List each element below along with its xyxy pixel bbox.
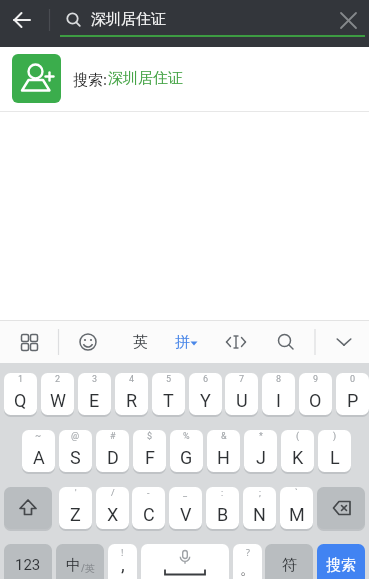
staticText: /英 [81,561,95,575]
staticText: N [253,504,266,525]
button[interactable]: : [206,487,239,529]
button[interactable]: 搜索 [317,544,365,579]
button[interactable]: 0 [336,373,369,415]
button[interactable]: 2 [41,373,74,415]
button[interactable]: % [170,430,203,472]
button[interactable]: ; [243,487,276,529]
button[interactable]: ! [108,544,137,579]
button[interactable]: 英 [120,321,160,363]
staticText: 6 [203,374,209,385]
staticText: O [309,390,322,411]
staticText: 8 [276,374,282,385]
staticText: R [126,390,138,411]
staticText: A [33,447,45,468]
staticText: U [236,390,248,411]
staticText: I [276,390,281,411]
staticText: F [145,447,155,468]
button[interactable]: 1 [4,373,37,415]
button[interactable]: * [244,430,277,472]
button[interactable] [0,0,47,47]
staticText: 1 [18,374,24,385]
button[interactable]: ( [281,430,314,472]
staticText: ` [295,488,298,499]
button[interactable]: $ [133,430,166,472]
button[interactable]: 符 [265,544,313,579]
staticText: 4 [129,374,135,385]
button[interactable]: 6 [189,373,222,415]
button[interactable]: 9 [299,373,332,415]
staticText: 5 [166,374,172,385]
staticText: ( [296,431,300,442]
staticText: S [70,447,81,468]
staticText: 符 [282,556,297,575]
button[interactable]: ) [318,430,351,472]
staticText: ~ [35,431,42,442]
button[interactable]: - [132,487,165,529]
button[interactable]: & [207,430,240,472]
button[interactable]: @ [59,430,92,472]
button[interactable] [68,321,108,363]
button[interactable] [325,0,369,47]
button[interactable] [10,321,50,363]
button[interactable]: 3 [78,373,111,415]
button[interactable]: ? [233,544,262,579]
staticText: H [217,447,230,468]
staticText: X [107,504,119,525]
staticText: 2 [55,374,61,385]
staticText: 搜索: [73,69,108,89]
staticText: , [121,553,125,575]
staticText: C [143,504,155,525]
staticText: K [292,447,304,468]
button[interactable]: 中 [56,544,104,579]
button[interactable]: 8 [262,373,295,415]
staticText: J [256,447,266,468]
button[interactable]: _ [169,487,202,529]
staticText: ) [333,431,337,442]
button[interactable] [266,321,306,363]
button[interactable]: # [96,430,129,472]
staticText: 中 [66,556,81,575]
button[interactable]: 拼 [166,321,206,363]
staticText: 深圳居住证 [91,10,166,29]
button[interactable]: ` [280,487,313,529]
button[interactable] [324,321,364,363]
button[interactable]: 4 [115,373,148,415]
staticText: ! [121,546,124,558]
button[interactable]: 搜索: [0,47,369,111]
staticText: Y [200,390,211,411]
staticText: G [180,447,193,468]
button[interactable]: ' [59,487,92,529]
button[interactable]: ~ [22,430,55,472]
staticText: & [221,431,227,442]
staticText: # [110,431,116,442]
staticText: 3 [92,374,98,385]
staticText: B [217,504,229,525]
staticText: 。 [240,560,255,579]
staticText: E [89,390,100,411]
button[interactable]: / [96,487,129,529]
staticText: T [163,390,174,411]
button[interactable] [4,487,52,529]
staticText: M [289,504,305,525]
staticText: : [221,488,224,499]
button[interactable]: 123 [4,544,52,579]
staticText: 0 [350,374,356,385]
staticText: 搜索 [326,556,356,575]
button[interactable]: 7 [225,373,258,415]
staticText: _ [183,488,188,499]
staticText: ; [259,488,261,499]
staticText: V [180,504,192,525]
button[interactable] [317,487,365,529]
staticText: * [259,431,263,442]
staticText: ? [246,546,250,558]
staticText: 深圳居住证 [108,69,183,88]
staticText: / [111,488,115,499]
button[interactable]: 5 [152,373,185,415]
button[interactable] [216,321,256,363]
staticText: 9 [313,374,319,385]
button[interactable] [141,544,229,579]
staticText: Q [14,390,27,411]
staticText: @ [71,431,80,442]
staticText: ' [75,488,77,499]
staticText: Z [70,504,81,525]
